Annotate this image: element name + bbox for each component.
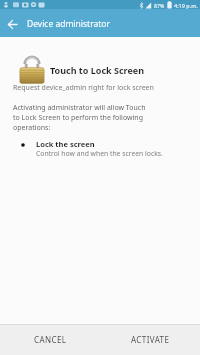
- staticText: 87%: [154, 2, 165, 9]
- button[interactable]: ACTIVATE: [100, 324, 200, 355]
- staticText: 4:19 p.m.: [174, 2, 198, 9]
- button[interactable]: [7, 19, 18, 30]
- staticText: ACTIVATE: [131, 334, 170, 345]
- staticText: CANCEL: [34, 334, 67, 345]
- staticText: Touch to Lock Screen: [50, 64, 145, 76]
- button[interactable]: CANCEL: [0, 324, 100, 355]
- staticText: Lock the screen: [36, 139, 95, 149]
- staticText: Activating administrator will allow Touc…: [13, 103, 146, 133]
- staticText: Request device_admin right for lock scre…: [13, 83, 154, 93]
- staticText: Device administrator: [27, 18, 110, 30]
- staticText: Control how and when the screen locks.: [36, 149, 163, 158]
